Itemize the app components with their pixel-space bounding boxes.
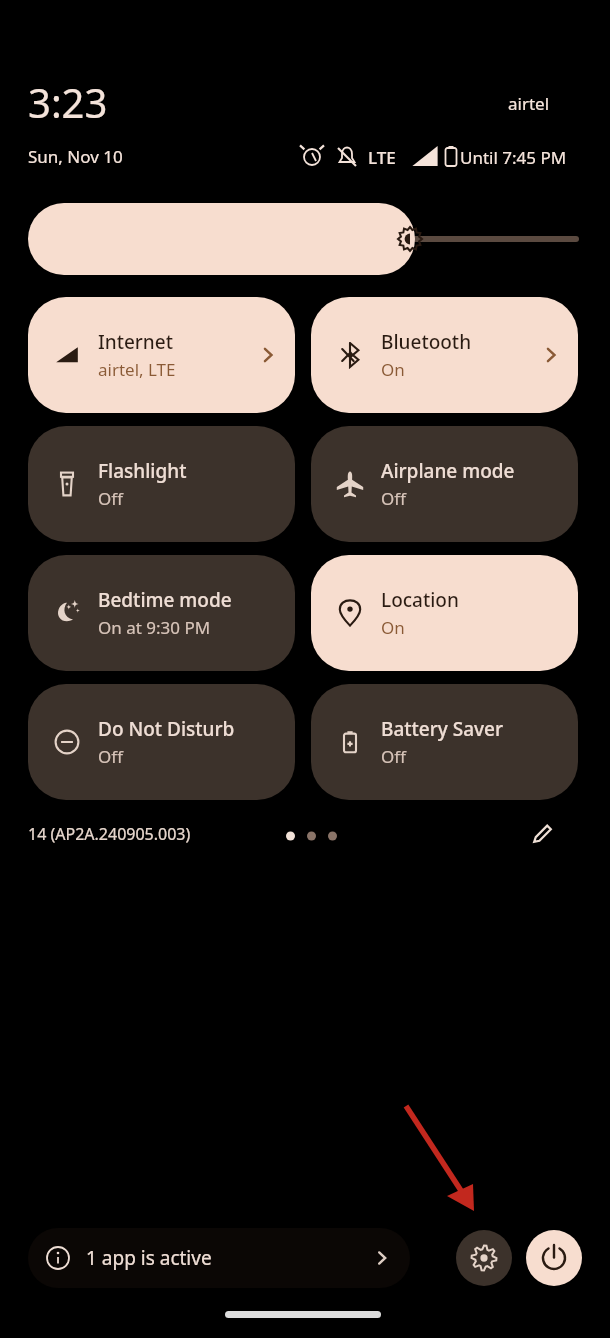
staticText: Internet (98, 329, 173, 355)
button[interactable]: Location (311, 555, 578, 671)
button[interactable]: Bluetooth (311, 297, 578, 413)
staticText: Off (381, 745, 406, 768)
button[interactable]: Edit tiles (520, 812, 564, 856)
button[interactable]: Brightness (28, 203, 582, 275)
button[interactable]: Flashlight (28, 426, 295, 542)
staticText: Off (98, 487, 123, 510)
staticText: Until 7:45 PM (460, 146, 567, 169)
button[interactable]: Power (526, 1230, 582, 1286)
staticText: On at 9:30 PM (98, 616, 211, 639)
staticText: Airplane mode (381, 458, 515, 484)
staticText: Bluetooth (381, 329, 472, 355)
staticText: Bedtime mode (98, 587, 232, 613)
button[interactable]: 1 app is active (28, 1228, 410, 1288)
button[interactable]: Internet (28, 297, 295, 413)
staticText: LTE (368, 146, 396, 169)
button[interactable]: Airplane mode (311, 426, 578, 542)
staticText: Do Not Disturb (98, 716, 235, 742)
staticText: On (381, 616, 405, 639)
staticText: 3:23 (28, 75, 108, 129)
staticText: Sun, Nov 10 (28, 145, 123, 168)
staticText: airtel, LTE (98, 358, 176, 381)
staticText: On (381, 358, 405, 381)
staticText: Battery Saver (381, 716, 504, 742)
button[interactable]: Do Not Disturb (28, 684, 295, 800)
button[interactable]: Battery Saver (311, 684, 578, 800)
staticText: 14 (AP2A.240905.003) (28, 823, 191, 845)
button[interactable]: Bedtime mode (28, 555, 295, 671)
staticText: Off (98, 745, 123, 768)
staticText: Off (381, 487, 406, 510)
staticText: airtel (508, 92, 550, 115)
staticText: Location (381, 587, 459, 613)
button[interactable]: Settings (456, 1230, 512, 1286)
staticText: Flashlight (98, 458, 187, 484)
staticText: 1 app is active (86, 1245, 212, 1271)
